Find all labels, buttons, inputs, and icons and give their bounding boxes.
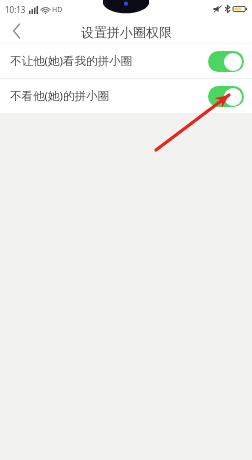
button[interactable]: 不看他(她)的拼小圈	[0, 79, 252, 113]
staticText: 不看他(她)的拼小圈	[10, 88, 109, 104]
button[interactable]: 开关	[208, 86, 244, 107]
staticText: 不让他(她)看我的拼小圈	[10, 53, 132, 69]
staticText: 设置拼小圈权限	[81, 24, 172, 40]
button[interactable]: 不让他(她)看我的拼小圈	[0, 44, 252, 78]
staticText: 10:13	[5, 4, 26, 15]
button[interactable]: 返回	[0, 18, 34, 44]
button[interactable]: 开关	[208, 51, 244, 72]
staticText: HD	[52, 5, 63, 15]
